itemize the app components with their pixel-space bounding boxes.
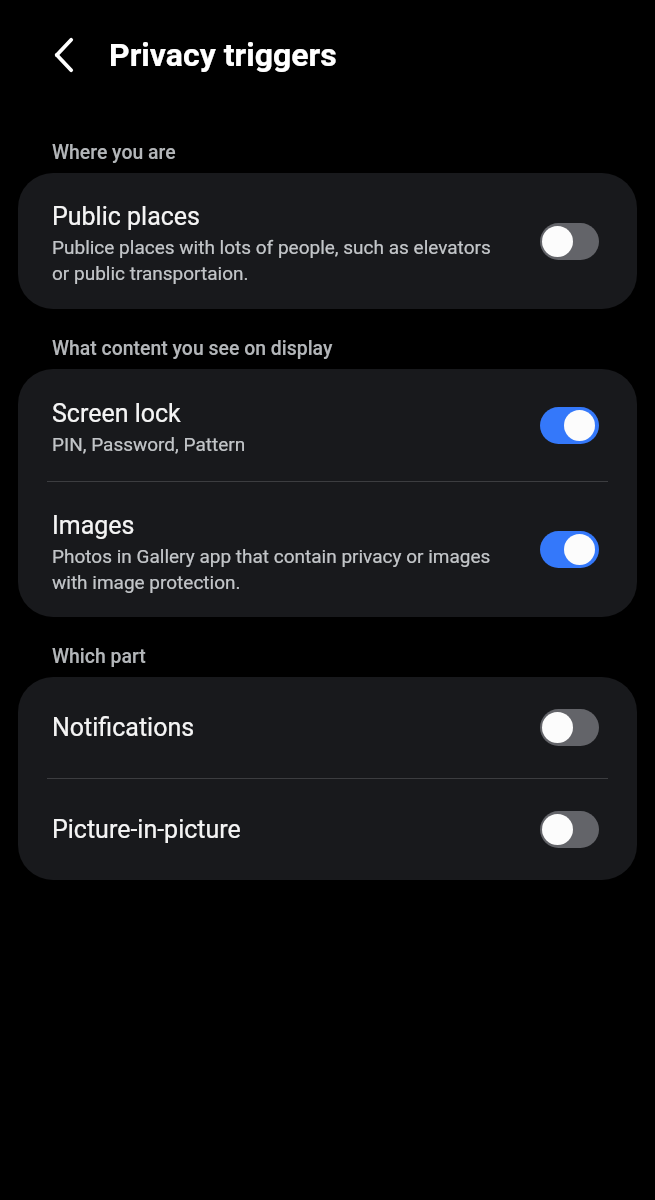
button[interactable]: Turn on: [540, 223, 599, 260]
staticText: What content you see on display: [52, 337, 333, 360]
staticText: Screen lock: [52, 399, 181, 428]
staticText: Publice places with lots of people, such…: [52, 236, 504, 284]
button[interactable]: Images: [18, 482, 637, 617]
button[interactable]: Turn off: [540, 407, 599, 444]
button[interactable]: Public places: [18, 173, 637, 309]
staticText: Picture-in-picture: [52, 815, 241, 844]
staticText: PIN, Password, Pattern: [52, 433, 246, 455]
staticText: Images: [52, 511, 135, 540]
staticText: Public places: [52, 202, 200, 231]
button[interactable]: Turn off: [540, 531, 599, 568]
button[interactable]: Back: [34, 25, 94, 85]
button[interactable]: Picture-in-picture: [18, 779, 637, 880]
button[interactable]: Screen lock: [18, 369, 637, 481]
button[interactable]: Turn on: [540, 709, 599, 746]
staticText: Notifications: [52, 713, 195, 742]
button[interactable]: Notifications: [18, 677, 637, 778]
staticText: Privacy triggers: [109, 36, 337, 74]
staticText: Photos in Gallery app that contain priva…: [52, 545, 504, 593]
staticText: Where you are: [52, 141, 176, 164]
button[interactable]: Turn on: [540, 811, 599, 848]
staticText: Which part: [52, 645, 146, 668]
